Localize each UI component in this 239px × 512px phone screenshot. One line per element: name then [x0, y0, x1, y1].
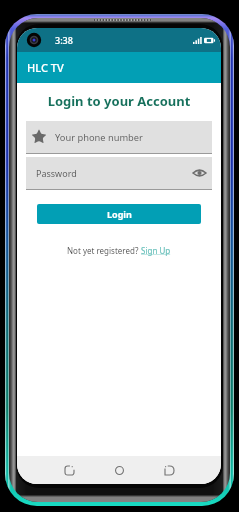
button[interactable]: Home: [105, 456, 133, 484]
button[interactable]: Sign Up: [141, 245, 171, 256]
button[interactable]: Login: [37, 204, 201, 224]
button[interactable]: Password: [26, 157, 212, 189]
staticText: Your phone number: [55, 131, 143, 144]
button[interactable]: Recent apps: [155, 456, 183, 484]
staticText: Login: [107, 208, 132, 220]
staticText: 3:38: [55, 34, 73, 46]
staticText: Password: [36, 167, 77, 179]
staticText: HLC TV: [27, 60, 64, 75]
button[interactable]: Back: [55, 456, 83, 484]
staticText: Not yet registered?: [67, 245, 141, 256]
staticText: Login to your Account: [17, 92, 221, 110]
button[interactable]: Your phone number: [26, 121, 212, 153]
button[interactable]: Show password: [191, 165, 207, 181]
